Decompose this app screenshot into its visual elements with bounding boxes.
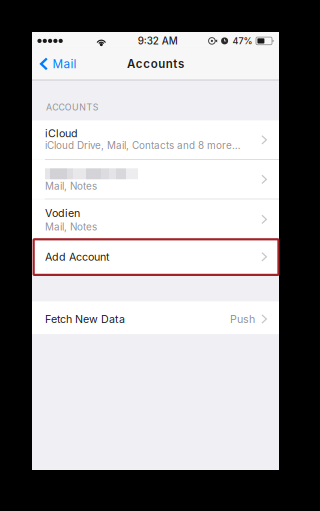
- staticText: 47%: [232, 35, 252, 46]
- staticText: iCloud: [45, 127, 78, 140]
- staticText: ACCOUNTS: [46, 102, 99, 113]
- staticText: Mail, Notes: [45, 221, 97, 233]
- button[interactable]: Vodien: [32, 199, 279, 239]
- button[interactable]: Mail, Notes: [32, 160, 279, 199]
- staticText: Accounts: [127, 57, 184, 71]
- button[interactable]: Add Account: [32, 240, 279, 274]
- staticText: Vodien: [45, 206, 80, 219]
- button[interactable]: Mail: [32, 47, 85, 80]
- staticText: iCloud Drive, Mail, Contacts and 8 more…: [45, 139, 241, 151]
- staticText: Add Account: [45, 250, 109, 263]
- button[interactable]: iCloud: [32, 120, 279, 159]
- staticText: Push: [230, 312, 255, 325]
- staticText: 9:32 AM: [138, 35, 178, 47]
- button[interactable]: Fetch New Data: [32, 301, 279, 334]
- staticText: Mail: [53, 57, 77, 71]
- staticText: Fetch New Data: [45, 312, 125, 325]
- staticText: Mail, Notes: [45, 180, 97, 192]
